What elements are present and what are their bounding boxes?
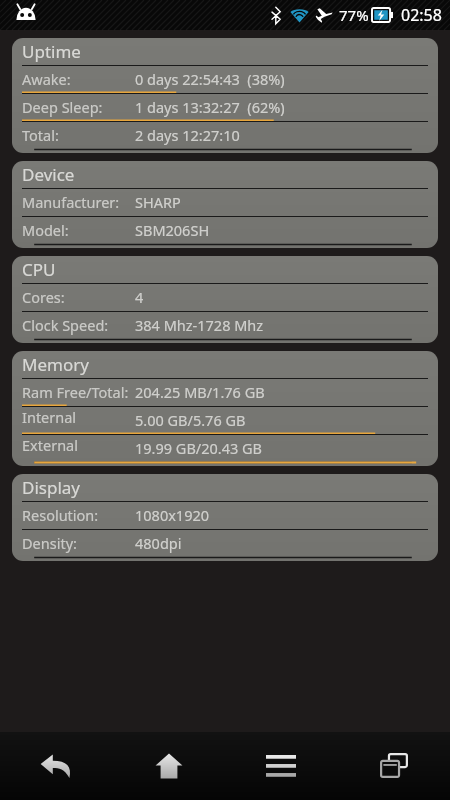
- staticText: CPU: [22, 258, 56, 281]
- staticText: 1080x1920: [135, 505, 210, 525]
- staticText: 204.25 MB/1.76 GB: [135, 382, 265, 402]
- staticText: Device: [22, 163, 75, 186]
- staticText: 384 Mhz-1728 Mhz: [135, 315, 264, 335]
- button[interactable]: Memory: [12, 351, 438, 466]
- staticText: Deep Sleep:: [22, 97, 135, 117]
- staticText: SHARP: [135, 192, 181, 212]
- button[interactable]: Back: [11, 732, 101, 800]
- staticText: Manufacturer:: [22, 192, 135, 212]
- staticText: Clock Speed:: [22, 315, 135, 335]
- staticText: 4: [135, 287, 144, 307]
- button[interactable]: Device: [12, 161, 438, 248]
- staticText: Total:: [22, 125, 135, 145]
- staticText: 19.99 GB/20.43 GB: [135, 438, 263, 458]
- staticText: Resolution:: [22, 505, 135, 525]
- staticText: Ram Free/Total:: [22, 382, 135, 402]
- button[interactable]: Uptime: [12, 38, 438, 153]
- staticText: Density:: [22, 533, 135, 553]
- staticText: Internal Storage:: [22, 407, 135, 433]
- staticText: Display: [22, 476, 80, 499]
- staticText: 480dpi: [135, 533, 182, 553]
- button[interactable]: CPU: [12, 256, 438, 343]
- staticText: Cores:: [22, 287, 135, 307]
- staticText: 0 days 22:54:43 (38%): [135, 69, 285, 89]
- staticText: 5.00 GB/5.76 GB: [135, 410, 246, 430]
- staticText: 77%: [339, 5, 369, 25]
- staticText: 1 days 13:32:27 (62%): [135, 97, 285, 117]
- button[interactable]: Recent apps: [349, 732, 439, 800]
- staticText: Uptime: [22, 40, 81, 63]
- button[interactable]: Display: [12, 474, 438, 561]
- staticText: Model:: [22, 220, 135, 240]
- staticText: 2 days 12:27:10: [135, 125, 240, 145]
- button[interactable]: Home: [124, 732, 214, 800]
- staticText: 02:58: [401, 4, 442, 26]
- staticText: External Storage:: [22, 435, 135, 461]
- button[interactable]: Menu: [236, 732, 326, 800]
- staticText: Memory: [22, 353, 89, 376]
- staticText: SBM206SH: [135, 220, 210, 240]
- staticText: Awake:: [22, 69, 135, 89]
